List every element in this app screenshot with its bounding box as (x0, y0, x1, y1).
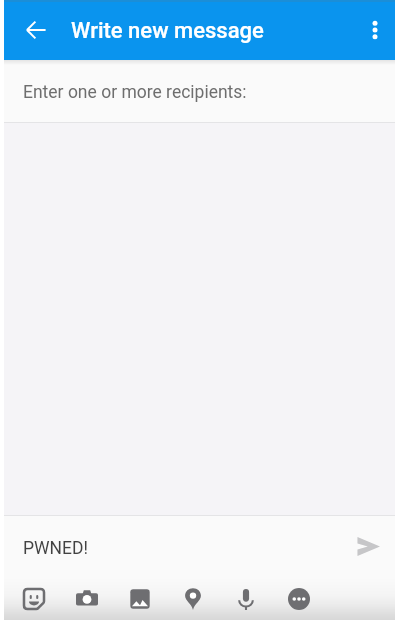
button[interactable]: Back (4, 2, 59, 58)
staticText: PWNED! (23, 538, 344, 559)
button[interactable]: Location (172, 578, 214, 620)
button[interactable]: Send (344, 523, 392, 571)
button[interactable]: Camera (66, 578, 108, 620)
staticText: Write new message (71, 18, 264, 44)
button[interactable]: Enter one or more recipients: (4, 60, 395, 122)
staticText: Enter one or more recipients: (23, 82, 247, 103)
button[interactable]: More options (351, 2, 395, 58)
button[interactable]: Voice (225, 578, 267, 620)
button[interactable]: Stickers (13, 578, 55, 620)
button[interactable]: Gallery (119, 578, 161, 620)
button[interactable]: More (278, 578, 320, 620)
